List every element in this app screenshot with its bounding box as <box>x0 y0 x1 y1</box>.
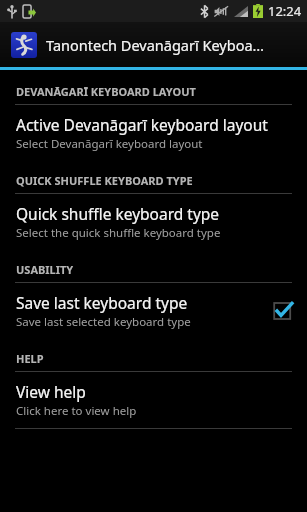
staticText: Select Devanāgarī keyboard layout <box>16 136 203 152</box>
button[interactable]: Active Devanāgarī keyboard layout <box>0 105 307 161</box>
staticText: Save last selected keyboard type <box>16 314 191 330</box>
button[interactable]: Save last keyboard type <box>0 283 307 339</box>
staticText: Save last keyboard type <box>16 292 188 313</box>
button[interactable]: Quick shuffle keyboard type <box>0 194 307 250</box>
staticText: HELP <box>16 351 44 366</box>
staticText: USABILITY <box>16 262 74 277</box>
staticText: Tanontech Devanāgarī Keyboa… <box>46 35 265 55</box>
staticText: Active Devanāgarī keyboard layout <box>16 114 268 135</box>
staticText: QUICK SHUFFLE KEYBOARD TYPE <box>16 173 193 188</box>
staticText: DEVANĀGARĪ KEYBOARD LAYOUT <box>16 84 196 99</box>
button[interactable]: View help <box>0 372 307 428</box>
staticText: 12:24 <box>268 2 302 20</box>
staticText: Select the quick shuffle keyboard type <box>16 225 221 241</box>
staticText: Quick shuffle keyboard type <box>16 203 220 224</box>
button[interactable]: Save last keyboard type toggle <box>273 301 293 321</box>
staticText: View help <box>16 381 86 402</box>
staticText: Click here to view help <box>16 403 137 419</box>
